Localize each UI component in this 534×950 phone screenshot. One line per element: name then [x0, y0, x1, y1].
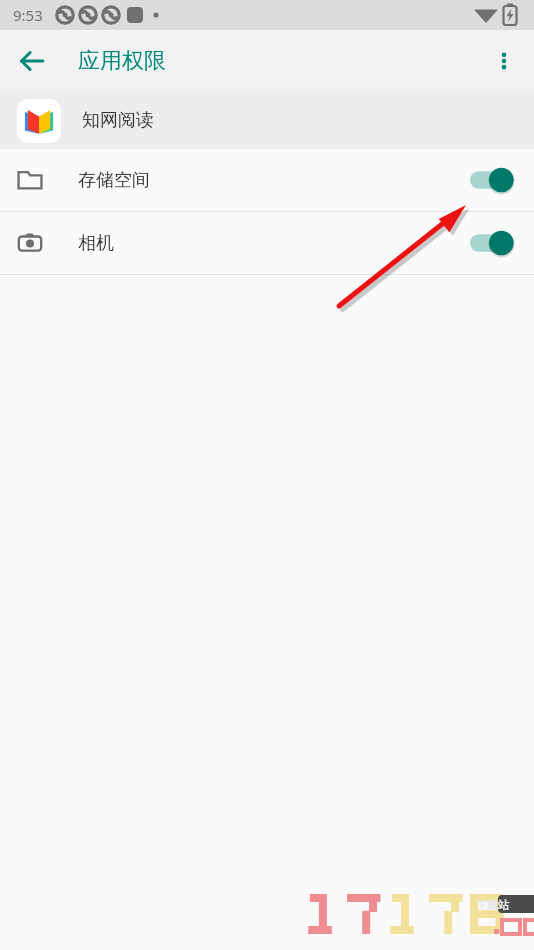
- button[interactable]: Back: [8, 37, 56, 85]
- button[interactable]: Storage: [462, 160, 520, 200]
- staticText: 下载站: [476, 898, 509, 912]
- staticText: 应用权限: [78, 47, 166, 75]
- button[interactable]: Camera: [462, 223, 520, 263]
- button[interactable]: More options: [480, 37, 528, 85]
- staticText: 存储空间: [78, 169, 150, 192]
- button[interactable]: 相机: [0, 212, 534, 274]
- button[interactable]: 知网阅读: [0, 92, 534, 149]
- staticText: 知网阅读: [82, 109, 154, 132]
- staticText: 相机: [78, 232, 114, 255]
- button[interactable]: 存储空间: [0, 149, 534, 211]
- staticText: 9:53: [13, 5, 43, 25]
